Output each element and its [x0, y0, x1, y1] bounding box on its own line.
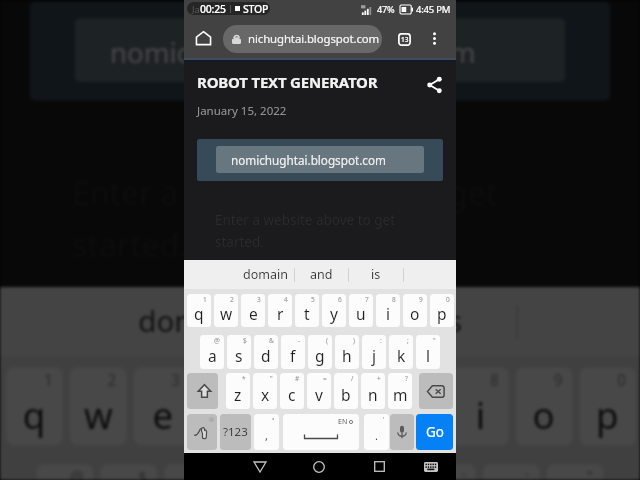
staticText: is [440, 301, 464, 341]
button[interactable]: 8 [376, 294, 400, 327]
button[interactable]: Emoji [187, 414, 217, 450]
button[interactable]: ) [355, 464, 412, 480]
staticText: 8 [490, 370, 499, 391]
staticText: w [220, 303, 233, 324]
staticText: p [437, 303, 447, 324]
button[interactable]: Backspace [419, 373, 453, 409]
button[interactable]: 4 [268, 294, 292, 327]
staticText: + [377, 374, 381, 383]
staticText: 2 [108, 370, 117, 391]
button[interactable]: Recent apps [367, 453, 391, 480]
staticText: domain [138, 301, 244, 341]
staticText: , [265, 428, 268, 443]
button[interactable]: and [294, 260, 348, 289]
button[interactable]: " [416, 335, 440, 369]
staticText: p [596, 389, 620, 438]
button[interactable]: 6 [322, 294, 346, 327]
button[interactable]: Go [416, 414, 453, 450]
button[interactable]: + [361, 373, 385, 409]
button[interactable]: ( [292, 464, 348, 480]
button[interactable]: & [164, 464, 221, 480]
button[interactable]: = [307, 373, 331, 409]
staticText: 0 [446, 295, 450, 304]
button[interactable]: Share [423, 74, 445, 96]
button[interactable]: ; [483, 464, 539, 480]
button[interactable]: nomichughtai.blogspot.com [30, 2, 610, 101]
staticText: k [397, 345, 406, 366]
button[interactable]: " [547, 464, 603, 480]
button[interactable]: 6 [325, 367, 381, 445]
staticText: i [476, 389, 485, 438]
button[interactable]: 2 [70, 367, 126, 445]
button[interactable]: ’ [364, 414, 389, 450]
staticText: ?123 [223, 424, 248, 440]
button[interactable]: - [281, 335, 305, 369]
staticText: @ [70, 467, 84, 480]
button[interactable]: # [280, 373, 304, 409]
button[interactable]: is [348, 260, 403, 289]
staticText: : [380, 336, 382, 345]
button[interactable]: domain [237, 260, 294, 289]
button[interactable]: 5 [261, 367, 318, 445]
button[interactable]: 8 [452, 367, 509, 445]
button[interactable]: More options [423, 27, 445, 49]
button[interactable]: * [226, 373, 250, 409]
button[interactable]: : [362, 335, 386, 369]
button[interactable]: @ [37, 464, 93, 480]
button[interactable]: ( [308, 335, 332, 369]
button[interactable]: 7 [349, 294, 373, 327]
button[interactable]: $ [100, 464, 157, 480]
button[interactable]: Home [307, 453, 331, 480]
button[interactable]: Ja [187, 2, 270, 15]
button[interactable]: 3 [134, 367, 190, 445]
button[interactable]: domain [124, 287, 259, 356]
staticText: 3 [171, 370, 181, 391]
button[interactable]: 5 [295, 294, 319, 327]
button[interactable]: / [334, 373, 358, 409]
button[interactable]: Space [283, 414, 359, 450]
button[interactable]: : [419, 464, 476, 480]
staticText: 3 [257, 295, 261, 304]
button[interactable]: Home [191, 26, 215, 50]
staticText: $ [243, 336, 247, 345]
button[interactable]: ? [388, 373, 412, 409]
button[interactable]: 7 [388, 367, 445, 445]
button[interactable]: 9 [403, 294, 427, 327]
staticText: h [342, 345, 352, 366]
staticText: 6 [338, 295, 342, 304]
button[interactable]: • [254, 414, 279, 450]
button[interactable]: - [228, 464, 285, 480]
button[interactable]: " [253, 373, 277, 409]
button[interactable]: @ [200, 335, 224, 369]
staticText: nichughtai.blogspot.com [248, 31, 380, 47]
button[interactable]: and [259, 287, 386, 356]
button[interactable]: Shift [187, 373, 218, 409]
button[interactable]: Back [248, 453, 272, 480]
staticText: 4 [235, 370, 244, 391]
button[interactable]: ) [335, 335, 359, 369]
button[interactable]: & [254, 335, 278, 369]
staticText: a [208, 345, 217, 366]
button[interactable]: Tabs, 13 open [393, 28, 416, 51]
button[interactable]: 1 [187, 294, 211, 327]
button[interactable]: is [386, 287, 516, 356]
button[interactable]: Hide keyboard [419, 453, 443, 480]
staticText: Ja [192, 3, 200, 15]
button[interactable]: $ [227, 335, 251, 369]
button[interactable]: 9 [516, 367, 572, 445]
button[interactable]: 0 [580, 367, 636, 445]
button[interactable]: ?123 [220, 414, 251, 450]
button[interactable]: 3 [241, 294, 265, 327]
button[interactable]: Voice input [390, 414, 414, 450]
button[interactable]: nomichughtai.blogspot.com [197, 139, 443, 181]
button[interactable]: ; [389, 335, 413, 369]
button[interactable]: 1 [6, 367, 63, 445]
button[interactable]: 2 [214, 294, 238, 327]
button[interactable]: 4 [197, 367, 254, 445]
staticText: t [304, 303, 310, 324]
staticText: u [405, 389, 429, 438]
button[interactable]: 0 [430, 294, 454, 327]
staticText: 13 [401, 35, 409, 44]
button[interactable]: nichughtai.blogspot.com [223, 25, 382, 53]
